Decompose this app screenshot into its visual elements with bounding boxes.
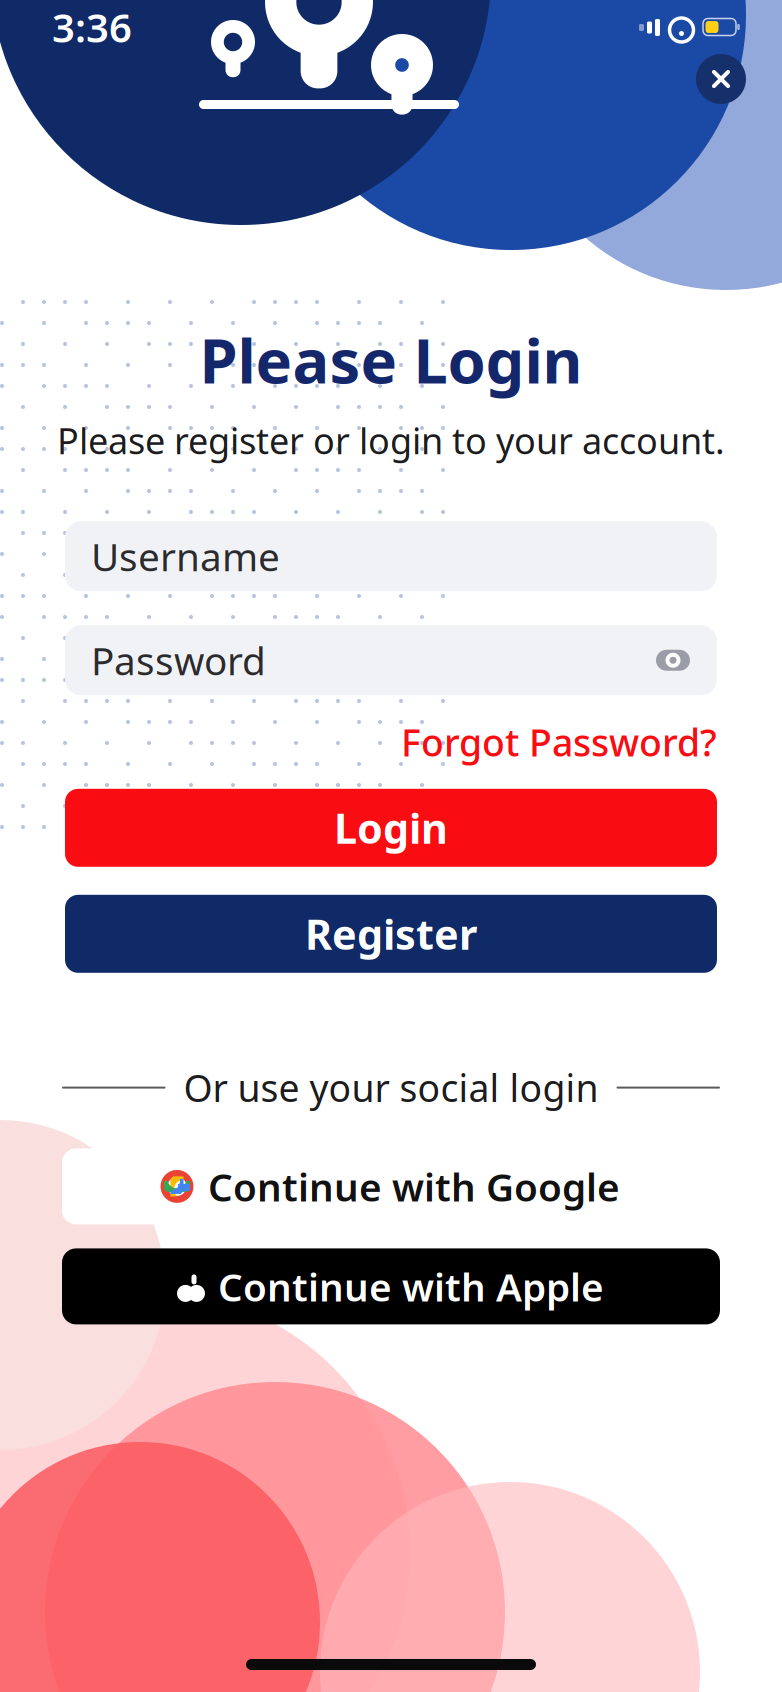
button[interactable]: Continue with Apple xyxy=(62,1248,720,1324)
button[interactable]: Close xyxy=(696,54,746,104)
staticText: Continue with Apple xyxy=(218,1261,604,1312)
staticText: 3:36 xyxy=(52,0,132,53)
staticText: Please register or login to your account… xyxy=(57,416,725,464)
button[interactable]: Forgot Password? xyxy=(401,717,717,767)
staticText: Register xyxy=(305,906,477,961)
button[interactable]: Register xyxy=(65,895,717,973)
button[interactable]: Continue with Google xyxy=(62,1148,720,1224)
staticText: Continue with Google xyxy=(208,1161,620,1212)
button[interactable]: Login xyxy=(65,789,717,867)
staticText: Please Login xyxy=(199,319,582,400)
staticText: Login xyxy=(334,800,448,855)
staticText: Username xyxy=(91,531,280,582)
staticText: Or use your social login xyxy=(183,1063,598,1112)
staticText: Forgot Password? xyxy=(401,717,717,767)
staticText: Password xyxy=(91,635,266,686)
